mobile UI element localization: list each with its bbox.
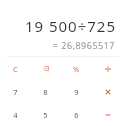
button[interactable]: 5 [30,103,61,126]
staticText: 7 [13,87,18,97]
other: Divide [104,65,112,73]
staticText: 4 [13,110,18,120]
staticText: 9 [74,87,79,97]
staticText: % [73,64,80,74]
other: Multiply [104,88,112,96]
staticText: 5 [43,110,48,120]
button[interactable]: 9 [61,80,92,103]
staticText: 19 500÷725 [24,16,116,36]
button[interactable]: 6 [61,103,92,126]
button[interactable]: 7 [0,80,30,103]
staticText: 8 [43,87,48,97]
button[interactable]: Subtract [92,103,123,126]
button[interactable]: Backspace [30,57,61,80]
button[interactable]: Divide [92,57,123,80]
other: Subtract [104,111,112,119]
button[interactable]: % [61,57,92,80]
button[interactable]: 8 [30,80,61,103]
staticText: C [13,64,18,74]
other: Backspace [43,66,49,71]
button[interactable]: Multiply [92,80,123,103]
staticText: 6 [74,110,79,120]
button[interactable]: C [0,57,30,80]
button[interactable]: 4 [0,103,30,126]
staticText: = 26,8965517 [52,39,115,51]
